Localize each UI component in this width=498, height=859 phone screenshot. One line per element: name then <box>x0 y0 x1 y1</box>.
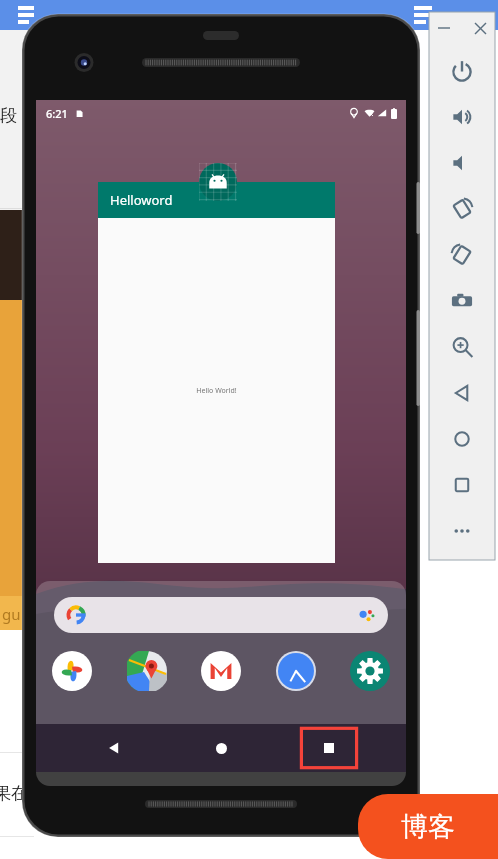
staticText: 段 <box>0 105 17 126</box>
button[interactable]: Home <box>191 724 251 772</box>
button[interactable]: More <box>429 508 495 554</box>
button[interactable]: Power <box>429 48 495 94</box>
button[interactable]: Gmail <box>199 649 243 693</box>
button[interactable]: Rotate left <box>429 186 495 232</box>
staticText: 果在 <box>0 783 28 804</box>
button[interactable]: Minimize <box>433 17 455 39</box>
staticText: 博客 <box>401 810 455 844</box>
staticText: Helloword <box>110 191 173 209</box>
button[interactable] <box>54 597 388 633</box>
staticText: gu <box>2 604 21 624</box>
button[interactable]: Volume up <box>429 94 495 140</box>
button[interactable]: Volume down <box>429 140 495 186</box>
button[interactable]: Zoom <box>429 324 495 370</box>
button[interactable]: Take screenshot <box>429 278 495 324</box>
button[interactable]: Overview <box>429 462 495 508</box>
button[interactable]: Helloword <box>98 182 335 218</box>
button[interactable]: App icon <box>199 163 237 201</box>
button[interactable]: Photos <box>50 649 94 693</box>
button[interactable]: Home <box>429 416 495 462</box>
button[interactable]: Settings <box>348 649 392 693</box>
button[interactable]: Back <box>429 370 495 416</box>
staticText: Hello World! <box>196 386 237 396</box>
button[interactable]: Close <box>469 17 491 39</box>
button[interactable]: Overview <box>299 724 359 772</box>
button[interactable]: 博客 <box>358 794 498 859</box>
button[interactable]: Maps <box>125 649 169 693</box>
button[interactable]: Rotate right <box>429 232 495 278</box>
button[interactable]: Back <box>84 724 144 772</box>
staticText: 6:21 <box>46 106 68 121</box>
button[interactable]: Clock <box>274 649 318 693</box>
